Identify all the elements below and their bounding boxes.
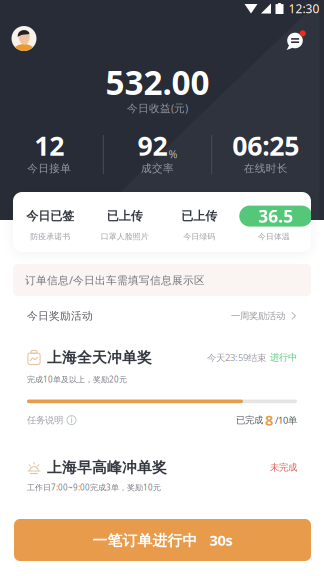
staticText: 上海全天冲单奖 xyxy=(47,348,152,366)
staticText: 12:30 xyxy=(288,0,319,16)
staticText: 一笔订单进行中 30s xyxy=(92,530,232,550)
button[interactable]: 已上传 xyxy=(101,203,149,241)
staticText: 成交率 xyxy=(141,162,174,175)
staticText: 今日收益(元) xyxy=(127,101,188,115)
staticText: 完成10单及以上，奖励20元 xyxy=(27,374,127,385)
staticText: 已上传 xyxy=(107,209,143,223)
staticText: 532.00 xyxy=(105,60,209,104)
staticText: 已完成 xyxy=(236,414,263,426)
staticText: 防疫承诺书 xyxy=(30,232,70,241)
staticText: 已上传 xyxy=(181,209,217,223)
staticText: 12 xyxy=(34,128,64,163)
staticText: 一周奖励活动 xyxy=(231,310,285,322)
staticText: % xyxy=(168,147,177,161)
staticText: 今日体温 xyxy=(258,232,290,241)
staticText: 今日已签 xyxy=(26,209,74,223)
staticText: 口罩人脸照片 xyxy=(101,232,149,241)
button[interactable]: 今日奖励活动 xyxy=(13,304,311,328)
staticText: 8 xyxy=(265,410,273,430)
staticText: 任务说明 xyxy=(27,414,63,426)
staticText: 今日奖励活动 xyxy=(27,309,93,322)
staticText: 92 xyxy=(137,128,167,163)
staticText: /10单 xyxy=(275,414,297,426)
button[interactable]: 订单信息/今日出车需填写信息展示区 xyxy=(13,264,311,296)
staticText: 今日接单 xyxy=(27,162,71,175)
button[interactable]: 今日已签 xyxy=(26,203,74,241)
staticText: 06:25 xyxy=(232,128,299,163)
staticText: 进行中 xyxy=(270,352,297,363)
staticText: 工作日7:00~9:00完成3单，奖励10元 xyxy=(27,482,161,493)
staticText: 未完成 xyxy=(270,462,297,473)
button[interactable]: 一笔订单进行中 30s xyxy=(14,519,311,561)
staticText: 上海早高峰冲单奖 xyxy=(47,458,167,476)
button[interactable]: Messages xyxy=(285,30,306,51)
staticText: 今天23:59结束 xyxy=(207,351,266,364)
staticText: 今日绿码 xyxy=(183,232,215,241)
staticText: 订单信息/今日出车需填写信息展示区 xyxy=(25,273,205,287)
staticText: 36.5 xyxy=(258,205,293,228)
staticText: i xyxy=(70,415,72,425)
staticText: 在线时长 xyxy=(244,162,288,175)
button[interactable]: Profile xyxy=(11,26,36,51)
button[interactable]: 已上传 xyxy=(181,203,217,241)
